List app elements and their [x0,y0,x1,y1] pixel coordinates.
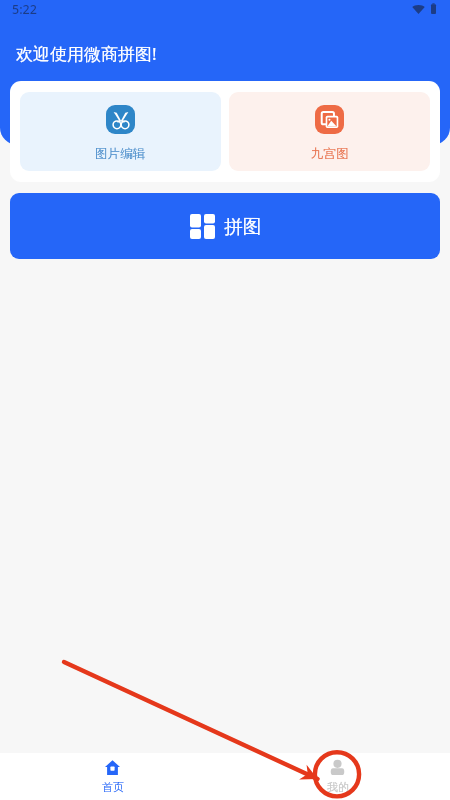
staticText: 5:22 [12,1,37,18]
button[interactable]: 九宫图 [229,92,430,171]
staticText: 我的 [327,780,349,794]
button[interactable]: 我的 [225,753,450,800]
button[interactable]: 拼图 [10,193,440,259]
staticText: 首页 [102,780,124,794]
staticText: 拼图 [224,215,261,238]
button[interactable]: 首页 [0,753,225,800]
staticText: 欢迎使用微商拼图! [16,42,157,65]
button[interactable]: 图片编辑 [20,92,221,171]
staticText: 九宫图 [311,146,349,162]
staticText: 图片编辑 [95,146,146,162]
